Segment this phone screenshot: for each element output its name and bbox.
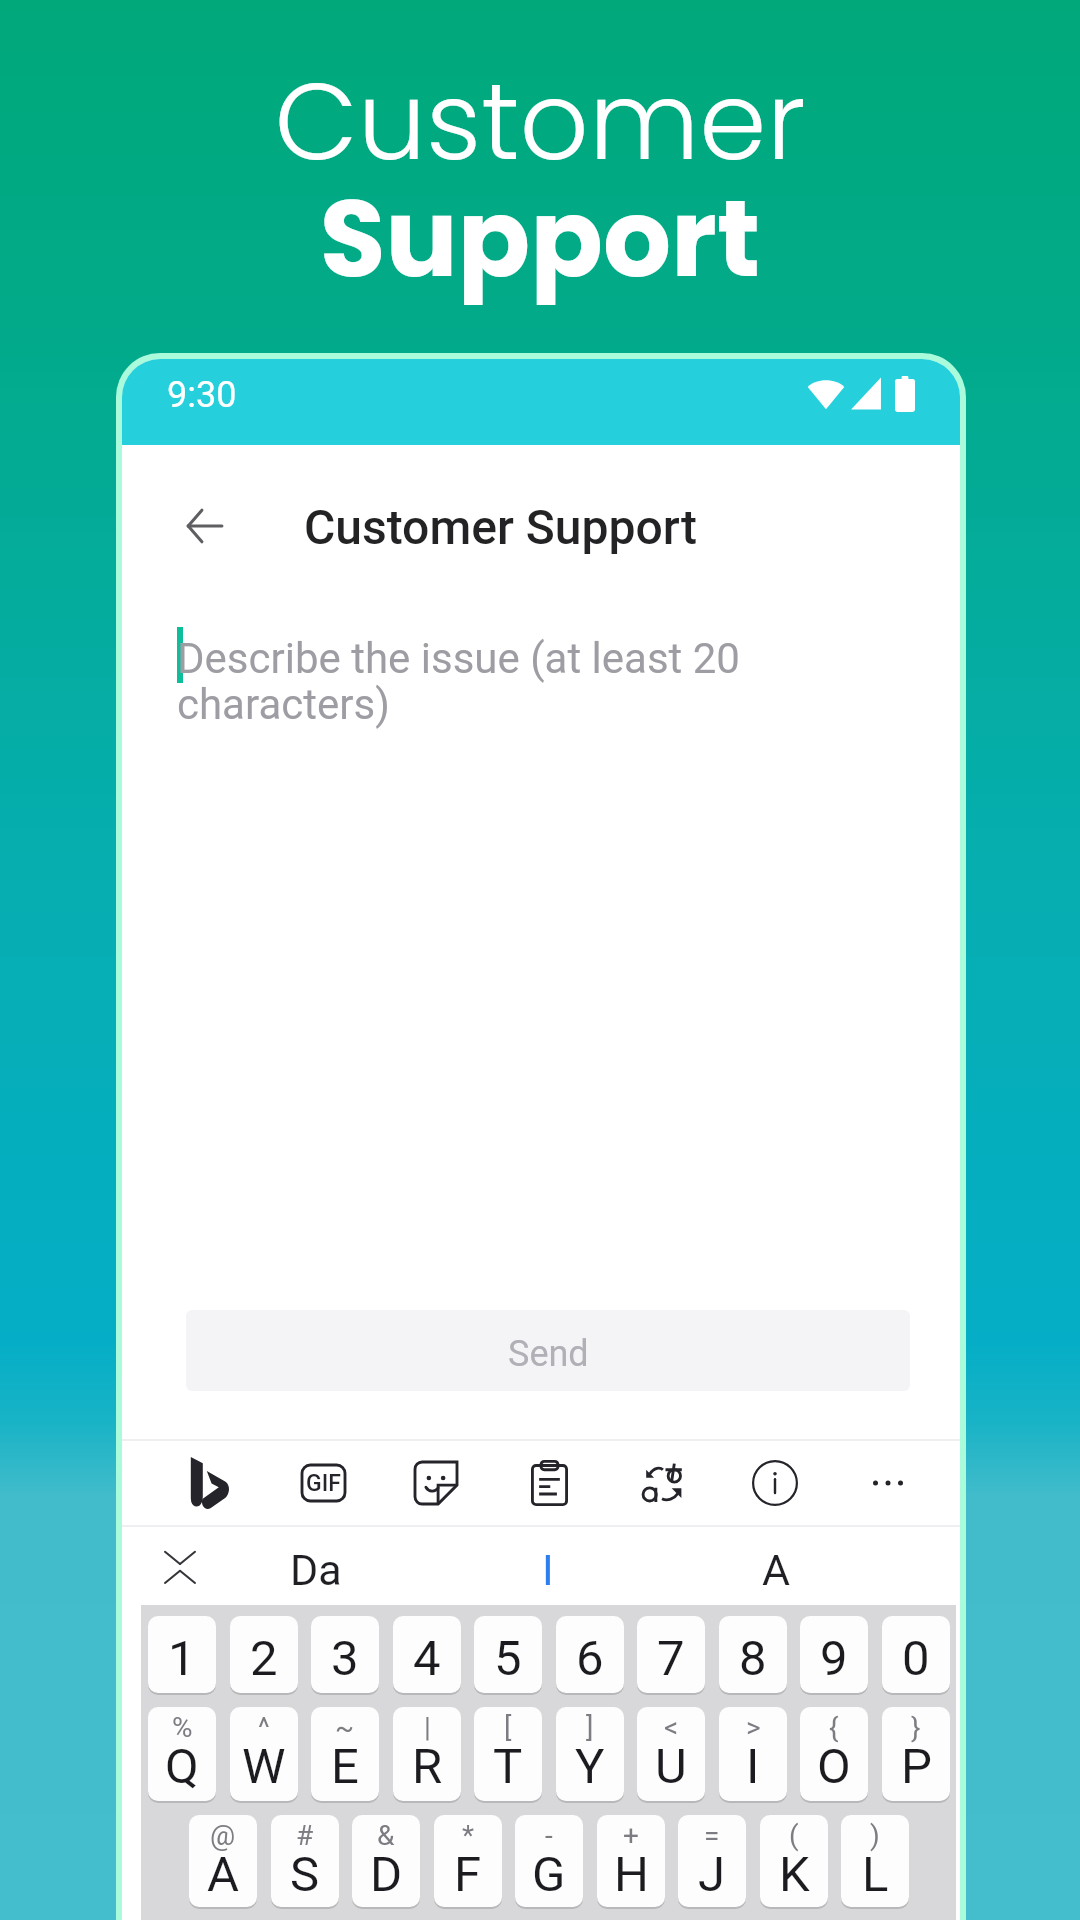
- button[interactable]: 0: [882, 1616, 950, 1693]
- staticText: ]: [586, 1711, 594, 1744]
- staticText: H: [614, 1846, 649, 1903]
- staticText: +: [623, 1819, 639, 1852]
- staticText: G: [532, 1846, 566, 1903]
- button[interactable]: More: [838, 1441, 938, 1525]
- button[interactable]: -: [515, 1815, 583, 1907]
- button[interactable]: #: [271, 1815, 339, 1907]
- button[interactable]: Bing: [160, 1441, 260, 1525]
- button[interactable]: *: [434, 1815, 502, 1907]
- button[interactable]: 2: [230, 1616, 298, 1693]
- button[interactable]: 8: [719, 1616, 787, 1693]
- staticText: [: [504, 1711, 512, 1744]
- staticText: %: [172, 1711, 193, 1744]
- staticText: 7: [657, 1630, 685, 1687]
- button[interactable]: |: [393, 1707, 461, 1801]
- button[interactable]: ^: [230, 1707, 298, 1801]
- staticText: 6: [576, 1630, 604, 1687]
- button[interactable]: &: [352, 1815, 420, 1907]
- button[interactable]: Back: [164, 486, 244, 566]
- staticText: @: [210, 1819, 236, 1852]
- button[interactable]: I: [463, 1527, 633, 1607]
- staticText: &: [377, 1819, 395, 1852]
- staticText: ~: [335, 1711, 355, 1744]
- staticText: GIF: [306, 1470, 341, 1497]
- button[interactable]: GIF: [273, 1441, 373, 1525]
- staticText: }: [911, 1711, 921, 1744]
- button[interactable]: ): [841, 1815, 909, 1907]
- button[interactable]: 1: [148, 1616, 216, 1693]
- staticText: #: [296, 1819, 314, 1852]
- button[interactable]: +: [597, 1815, 665, 1907]
- staticText: E: [331, 1738, 359, 1795]
- button[interactable]: 5: [474, 1616, 542, 1693]
- staticText: O: [817, 1738, 851, 1795]
- staticText: |: [424, 1711, 431, 1744]
- button[interactable]: <: [637, 1707, 705, 1801]
- staticText: Q: [165, 1738, 199, 1795]
- button[interactable]: (: [760, 1815, 828, 1907]
- staticText: 9:30: [167, 374, 237, 416]
- staticText: 5: [494, 1630, 522, 1687]
- staticText: I: [746, 1738, 760, 1795]
- staticText: Y: [575, 1738, 605, 1795]
- staticText: *: [462, 1819, 475, 1852]
- staticText: Customer Support: [304, 499, 697, 555]
- staticText: <: [664, 1711, 679, 1744]
- staticText: 8: [739, 1630, 767, 1687]
- staticText: W: [242, 1738, 286, 1795]
- button[interactable]: @: [189, 1815, 257, 1907]
- staticText: F: [454, 1846, 482, 1903]
- staticText: R: [412, 1738, 443, 1795]
- staticText: T: [493, 1738, 523, 1795]
- staticText: {: [829, 1711, 839, 1744]
- button[interactable]: 7: [637, 1616, 705, 1693]
- button[interactable]: Da: [231, 1527, 401, 1607]
- staticText: 1: [168, 1630, 196, 1687]
- button[interactable]: =: [678, 1815, 746, 1907]
- staticText: Support: [0, 164, 1080, 314]
- staticText: K: [779, 1846, 810, 1903]
- button[interactable]: >: [719, 1707, 787, 1801]
- staticText: >: [746, 1711, 761, 1744]
- button[interactable]: Collapse suggestions: [148, 1527, 212, 1607]
- button[interactable]: 6: [556, 1616, 624, 1693]
- button[interactable]: Send: [186, 1310, 910, 1391]
- button[interactable]: Translate: [612, 1441, 712, 1525]
- staticText: ^: [258, 1711, 270, 1744]
- staticText: 3: [331, 1630, 359, 1687]
- button[interactable]: ~: [311, 1707, 379, 1801]
- staticText: Da: [290, 1545, 342, 1595]
- button[interactable]: 4: [393, 1616, 461, 1693]
- staticText: Describe the issue (at least 20 characte…: [177, 634, 905, 730]
- staticText: S: [290, 1846, 320, 1903]
- staticText: I: [542, 1545, 554, 1595]
- staticText: P: [901, 1738, 932, 1795]
- button[interactable]: ]: [556, 1707, 624, 1801]
- button[interactable]: Info: [725, 1441, 825, 1525]
- button[interactable]: [: [474, 1707, 542, 1801]
- staticText: D: [370, 1846, 403, 1903]
- staticText: (: [789, 1819, 799, 1852]
- staticText: -: [545, 1819, 553, 1852]
- staticText: Customer: [0, 46, 1080, 197]
- staticText: 9: [820, 1630, 848, 1687]
- staticText: Send: [508, 1333, 589, 1375]
- staticText: 4: [413, 1630, 441, 1687]
- staticText: A: [762, 1545, 791, 1595]
- button[interactable]: {: [800, 1707, 868, 1801]
- button[interactable]: 3: [311, 1616, 379, 1693]
- staticText: L: [862, 1846, 889, 1903]
- button[interactable]: }: [882, 1707, 950, 1801]
- button[interactable]: %: [148, 1707, 216, 1801]
- button[interactable]: 9: [800, 1616, 868, 1693]
- staticText: ): [870, 1819, 880, 1852]
- staticText: 2: [250, 1630, 278, 1687]
- staticText: U: [655, 1738, 687, 1795]
- staticText: J: [698, 1846, 726, 1903]
- button[interactable]: Clipboard: [499, 1441, 599, 1525]
- staticText: =: [704, 1819, 720, 1852]
- staticText: 0: [902, 1630, 930, 1687]
- button[interactable]: Stickers: [386, 1441, 486, 1525]
- button[interactable]: A: [691, 1527, 861, 1607]
- staticText: A: [207, 1846, 239, 1903]
